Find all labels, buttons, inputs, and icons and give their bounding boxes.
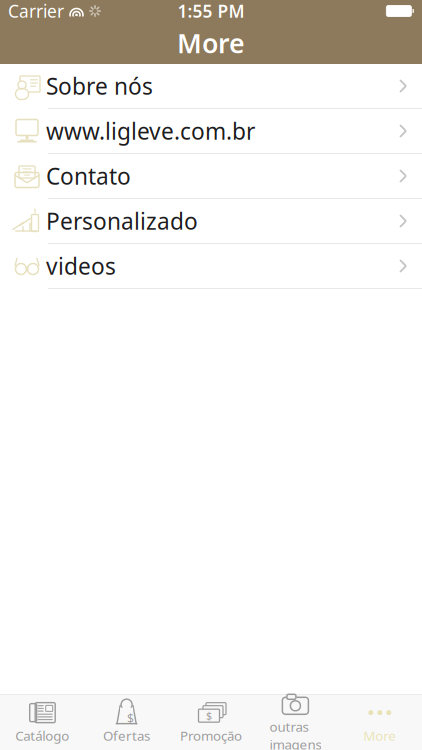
staticText: Sobre nós <box>46 71 153 101</box>
button[interactable]: videos <box>0 244 422 289</box>
staticText: 1:55 PM <box>177 0 244 22</box>
staticText: Catálogo <box>15 727 69 744</box>
staticText: Personalizado <box>46 206 198 236</box>
staticText: Contato <box>46 161 131 191</box>
button[interactable]: $ <box>169 697 253 747</box>
button[interactable]: $ <box>84 697 169 747</box>
staticText: More <box>177 25 245 61</box>
staticText: www.ligleve.com.br <box>46 116 255 146</box>
staticText: outras imagens <box>269 718 321 750</box>
button[interactable]: Personalizado <box>0 199 422 244</box>
staticText: $ <box>127 711 134 727</box>
staticText: Promoção <box>180 727 242 744</box>
staticText: $ <box>206 709 212 723</box>
button[interactable]: Catálogo <box>0 697 84 747</box>
staticText: videos <box>46 251 116 281</box>
button[interactable]: outras imagens <box>253 697 338 747</box>
button[interactable]: www.ligleve.com.br <box>0 109 422 154</box>
staticText: Carrier <box>8 0 64 22</box>
button[interactable]: More <box>338 697 422 747</box>
staticText: More <box>363 727 396 744</box>
button[interactable]: Contato <box>0 154 422 199</box>
button[interactable]: Sobre nós <box>0 64 422 109</box>
staticText: Ofertas <box>103 727 150 744</box>
